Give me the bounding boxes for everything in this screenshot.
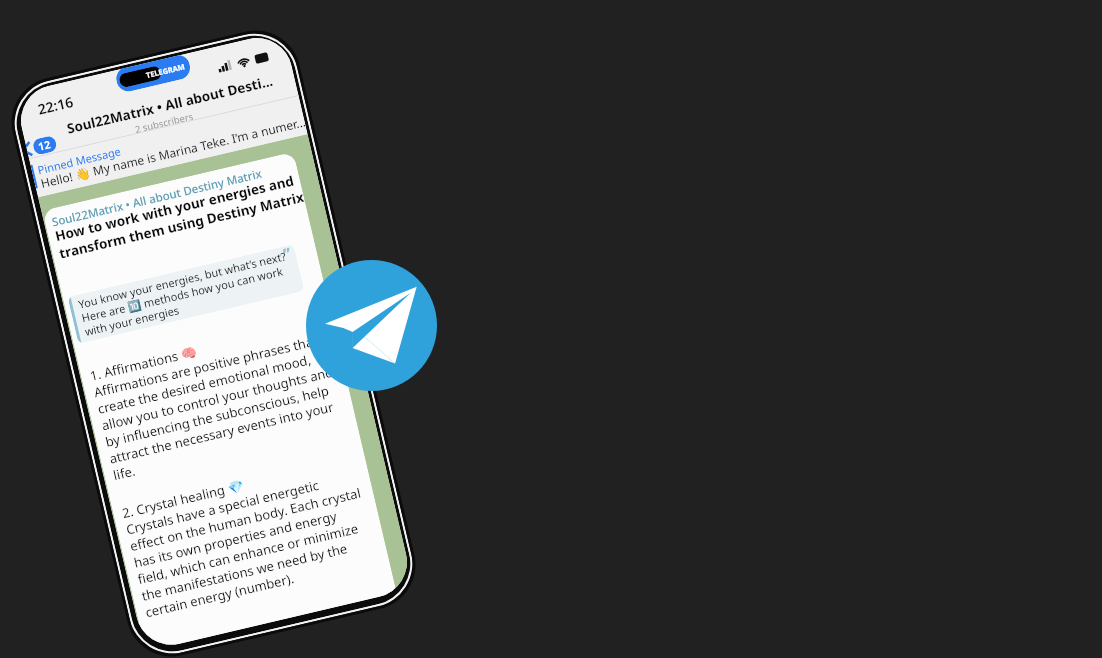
staticText: 2. Crystal healing 💎 Crystals have a spe… xyxy=(120,450,378,621)
button[interactable]: Soul22Matrix • All about Destiny Matrix xyxy=(42,152,397,652)
staticText: Soul22Matrix • All about Destiny Matrix xyxy=(50,165,264,230)
staticText: Hello! 👋 My name is Marina Teke. I’m a n… xyxy=(39,113,306,191)
staticText: 12 xyxy=(37,137,53,154)
staticText: Soul22Matrix • All about Desti... xyxy=(65,72,274,137)
button[interactable]: Telegram xyxy=(306,260,437,391)
staticText: 2 subscribers xyxy=(134,110,195,136)
staticText: 22:16 xyxy=(36,92,75,119)
button[interactable]: Back xyxy=(25,135,58,157)
staticText: You know your energies, but what’s next?… xyxy=(77,248,294,339)
staticText: ” xyxy=(282,245,294,265)
button[interactable]: Pinned Message xyxy=(30,107,279,189)
staticText: How to work with your energies and trans… xyxy=(53,170,306,263)
staticText: 1. Affirmations 🧠 Affirmations are posit… xyxy=(88,313,347,484)
staticText: TELEGRAM xyxy=(145,61,186,80)
staticText: Pinned Message xyxy=(36,143,122,177)
